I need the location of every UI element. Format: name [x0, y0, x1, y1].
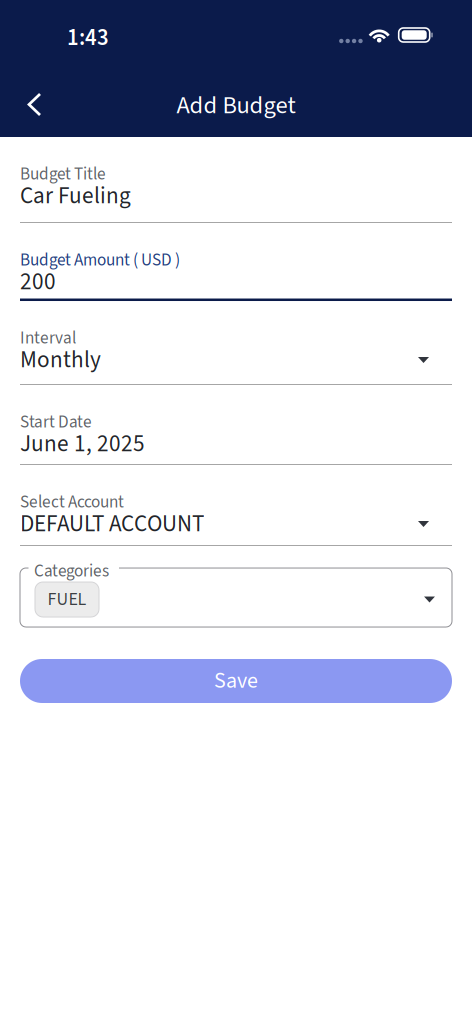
button[interactable]: Save [20, 659, 452, 703]
button[interactable]: Start Date [20, 385, 452, 465]
staticText: Start Date [20, 410, 92, 434]
staticText: Budget Title [20, 162, 106, 186]
staticText: Categories [34, 559, 109, 583]
staticText: Monthly [20, 343, 101, 376]
staticText: DEFAULT ACCOUNT [20, 507, 204, 540]
button[interactable]: Back [0, 78, 56, 129]
button[interactable]: Budget Title [20, 137, 452, 223]
staticText: Select Account [20, 490, 124, 514]
staticText: Interval [20, 326, 76, 350]
button[interactable]: Budget Amount ( USD ) [20, 223, 452, 301]
staticText: Budget Amount ( USD ) [20, 248, 180, 272]
staticText: 200 [20, 265, 56, 298]
staticText: FUEL [47, 587, 86, 612]
button[interactable]: Categories [20, 568, 452, 627]
button[interactable]: Interval [20, 301, 452, 385]
staticText: Save [214, 665, 258, 697]
button[interactable]: Select Account [20, 465, 452, 546]
staticText: 1:43 [67, 22, 109, 54]
staticText: June 1, 2025 [20, 427, 145, 460]
staticText: Add Budget [176, 88, 295, 123]
staticText: Car Fueling [20, 179, 131, 212]
